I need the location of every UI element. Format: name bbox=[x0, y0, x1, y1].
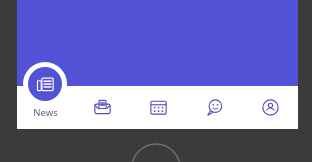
button[interactable]: Account bbox=[242, 86, 298, 129]
button[interactable]: Calendar bbox=[130, 86, 186, 129]
staticText: News bbox=[33, 106, 58, 119]
button[interactable]: Inbox bbox=[74, 86, 130, 129]
button[interactable]: Chat bbox=[186, 86, 242, 129]
button[interactable]: News bbox=[23, 62, 67, 126]
